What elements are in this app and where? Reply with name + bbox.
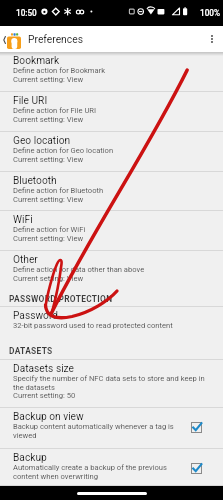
staticText: Preferences [28, 33, 83, 45]
staticText: 32-bit password used to read protected c… [13, 321, 173, 330]
button[interactable]: Bookmark [0, 52, 223, 92]
staticText: File URI [13, 95, 48, 107]
staticText: Specify the number of NFC data sets to s… [13, 374, 216, 400]
staticText: WiFi [13, 214, 33, 226]
staticText: Define action for data other than above … [13, 265, 145, 283]
button[interactable]: Geo location [0, 132, 223, 172]
staticText: Password [13, 310, 58, 322]
staticText: Define action for File URI Current setti… [13, 106, 97, 124]
button[interactable]: More options [201, 26, 223, 52]
button[interactable]: Datasets size [0, 360, 223, 408]
staticText: Backup on view [13, 411, 84, 423]
button[interactable]: Backup on view [0, 408, 223, 449]
button[interactable]: Backup [0, 449, 223, 486]
button[interactable]: WiFi [0, 211, 223, 251]
button[interactable]: Password [0, 307, 223, 340]
staticText: DATASETS [9, 346, 53, 356]
button[interactable]: Bluetooth [0, 172, 223, 211]
staticText: Bookmark [13, 55, 60, 67]
staticText: 10:50 [16, 8, 37, 18]
staticText: Other [13, 254, 38, 266]
staticText: Bluetooth [13, 175, 57, 187]
staticText: Backup [13, 452, 47, 464]
staticText: Define action for Geo location Current s… [13, 146, 114, 164]
staticText: PASSWORD PROTECTION [9, 294, 113, 304]
staticText: Define action for Bluetooth Current sett… [13, 186, 104, 204]
staticText: Backup content automatically whenever a … [13, 422, 178, 440]
staticText: Define action for Bookmark Current setti… [13, 66, 106, 84]
staticText: Define action for WiFi Current setting: … [13, 225, 86, 243]
staticText: 100% [200, 8, 220, 18]
staticText: Geo location [13, 135, 71, 147]
button[interactable]: Navigate up [0, 26, 23, 52]
button[interactable]: Other [0, 251, 223, 291]
button[interactable]: File URI [0, 92, 223, 132]
staticText: Automatically create a backup of the pre… [13, 463, 178, 481]
staticText: Datasets size [13, 363, 74, 375]
